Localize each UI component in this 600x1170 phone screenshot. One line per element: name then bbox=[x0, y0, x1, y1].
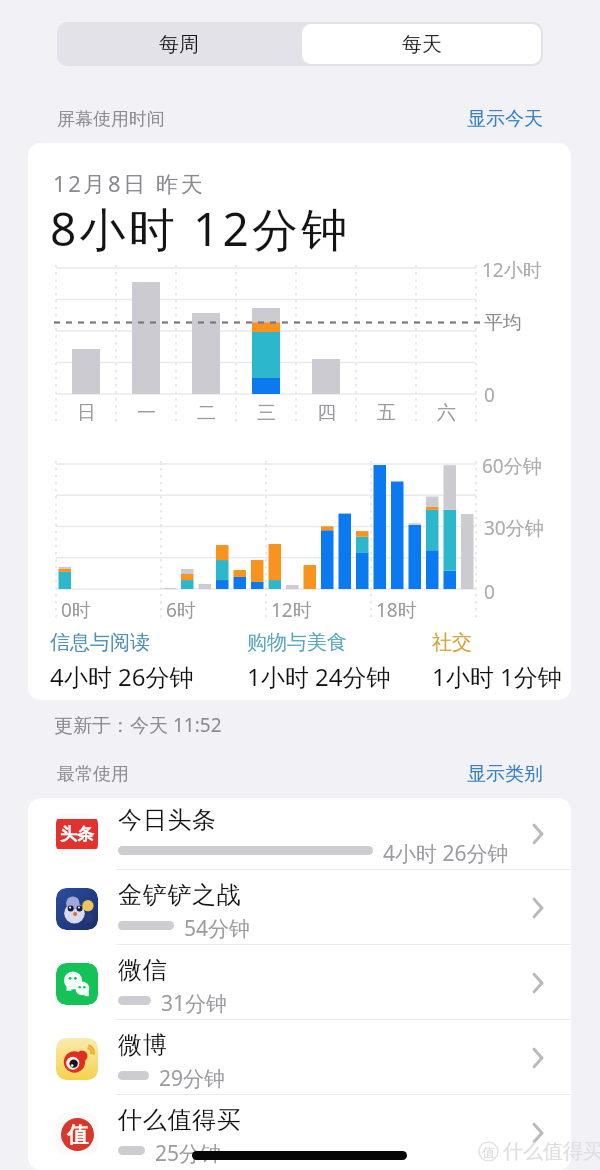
button[interactable]: 显示今天 bbox=[467, 107, 543, 131]
staticText: 1小时 24分钟 bbox=[247, 660, 391, 693]
staticText: 0时 bbox=[61, 597, 91, 623]
staticText: 4小时 26分钟 bbox=[383, 839, 509, 868]
staticText: 12时 bbox=[271, 597, 312, 623]
staticText: 每天 bbox=[402, 32, 442, 57]
staticText: 显示类别 bbox=[467, 762, 543, 786]
staticText: 4小时 26分钟 bbox=[50, 660, 194, 693]
staticText: 0 bbox=[484, 382, 495, 408]
staticText: 值 bbox=[482, 1144, 495, 1160]
staticText: 0 bbox=[484, 579, 495, 605]
button[interactable]: 微博 bbox=[28, 1020, 571, 1095]
staticText: 社交 bbox=[432, 630, 472, 655]
staticText: 29分钟 bbox=[159, 1064, 226, 1093]
other: 查看 金铲铲之战 详情 bbox=[505, 870, 571, 945]
staticText: 12小时 bbox=[482, 257, 542, 283]
staticText: 头条 bbox=[60, 824, 94, 845]
staticText: 信息与阅读 bbox=[50, 630, 150, 655]
other: 查看 微博 详情 bbox=[505, 1020, 571, 1095]
staticText: 平均 bbox=[484, 311, 522, 335]
button[interactable]: 显示类别 bbox=[467, 762, 543, 786]
staticText: 54分钟 bbox=[184, 914, 251, 943]
staticText: 三 bbox=[257, 401, 276, 425]
other: 查看 微信 详情 bbox=[505, 945, 571, 1020]
staticText: 12月8日 昨天 bbox=[53, 168, 206, 198]
staticText: 8小时 12分钟 bbox=[50, 197, 351, 260]
staticText: 五 bbox=[377, 401, 396, 425]
staticText: 微信 bbox=[118, 955, 168, 985]
staticText: 30分钟 bbox=[484, 515, 544, 541]
staticText: 屏幕使用时间 bbox=[57, 108, 165, 131]
button[interactable]: 值 bbox=[28, 1095, 571, 1170]
staticText: 更新于：今天 11:52 bbox=[54, 712, 222, 738]
staticText: 六 bbox=[437, 401, 456, 425]
staticText: 什么值得买 bbox=[118, 1105, 242, 1135]
other: 查看 什么值得买 详情 bbox=[505, 1095, 571, 1170]
staticText: 1小时 1分钟 bbox=[432, 660, 562, 693]
other: 查看 今日头条 详情 bbox=[505, 798, 571, 870]
staticText: 日 bbox=[77, 401, 96, 425]
staticText: 18时 bbox=[376, 597, 417, 623]
button[interactable]: 微信 bbox=[28, 945, 571, 1020]
staticText: 什么值得买 bbox=[503, 1139, 600, 1164]
staticText: 25分钟 bbox=[155, 1139, 222, 1168]
button[interactable]: 金铲铲之战 bbox=[28, 870, 571, 945]
staticText: 每周 bbox=[159, 32, 199, 57]
staticText: 购物与美食 bbox=[247, 630, 347, 655]
staticText: 一 bbox=[137, 401, 156, 425]
button[interactable]: 头条 bbox=[28, 798, 571, 870]
staticText: 31分钟 bbox=[161, 989, 228, 1018]
staticText: 值 bbox=[67, 1122, 88, 1148]
staticText: 显示今天 bbox=[467, 107, 543, 131]
staticText: 二 bbox=[197, 401, 216, 425]
staticText: 60分钟 bbox=[482, 453, 542, 479]
staticText: 微博 bbox=[118, 1030, 168, 1060]
button[interactable]: 每周 bbox=[57, 22, 300, 66]
staticText: 今日头条 bbox=[118, 805, 217, 835]
staticText: 金铲铲之战 bbox=[118, 880, 242, 910]
staticText: 最常使用 bbox=[57, 763, 129, 786]
button[interactable]: 每天 bbox=[302, 24, 541, 64]
staticText: 四 bbox=[317, 401, 336, 425]
staticText: 6时 bbox=[166, 597, 196, 623]
